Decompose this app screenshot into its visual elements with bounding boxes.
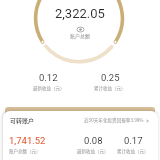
staticText: 1,741.52 bbox=[9, 135, 46, 146]
staticText: 0.08 bbox=[84, 135, 103, 146]
staticText: 累计收益（元） bbox=[117, 148, 149, 155]
staticText: 可转账户 bbox=[10, 116, 35, 125]
staticText: 0.12 bbox=[39, 72, 58, 83]
button[interactable]: Toggle balance visibility bbox=[74, 25, 86, 33]
staticText: 0.25 bbox=[101, 72, 120, 83]
staticText: 账户总额 bbox=[70, 32, 91, 39]
staticText: 最新收益（元） bbox=[77, 148, 109, 155]
staticText: 0.17 bbox=[124, 135, 143, 146]
button[interactable]: 可转账户 bbox=[3, 111, 158, 160]
staticText: 账户总额（元） bbox=[9, 148, 41, 155]
staticText: 近30天年化投资回报率3.90% bbox=[84, 117, 144, 124]
staticText: 2,322.05 bbox=[55, 6, 105, 21]
staticText: 累计收益（元） bbox=[94, 85, 126, 92]
staticText: 最新收益（元） bbox=[33, 85, 65, 92]
